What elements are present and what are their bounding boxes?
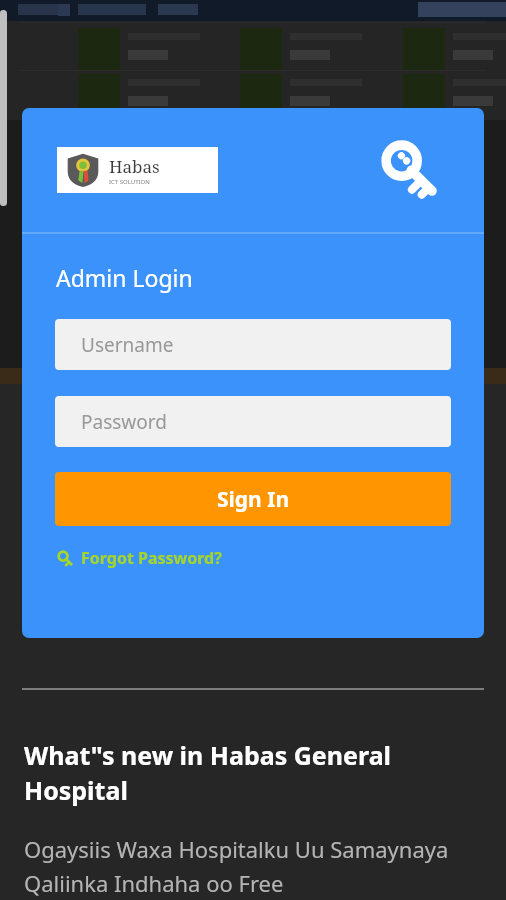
staticText: Username [81, 332, 174, 358]
staticText: Password [81, 409, 167, 435]
button[interactable]: Sign In [55, 472, 451, 526]
staticText: Admin Login [56, 262, 193, 293]
other: Key [378, 137, 444, 203]
button[interactable]: Forgot Password? [55, 544, 224, 572]
staticText: ICT SOLUTION [109, 178, 150, 186]
staticText: Ogaysiis Waxa Hospitalku Uu Samaynaya Qa… [24, 834, 482, 898]
staticText: Forgot Password? [81, 547, 222, 569]
staticText: What"s new in Habas General Hospital [24, 738, 482, 808]
staticText: Habas [109, 155, 160, 178]
staticText: Sign In [217, 485, 290, 514]
button[interactable]: Username [55, 319, 451, 370]
button[interactable]: Password [55, 396, 451, 447]
